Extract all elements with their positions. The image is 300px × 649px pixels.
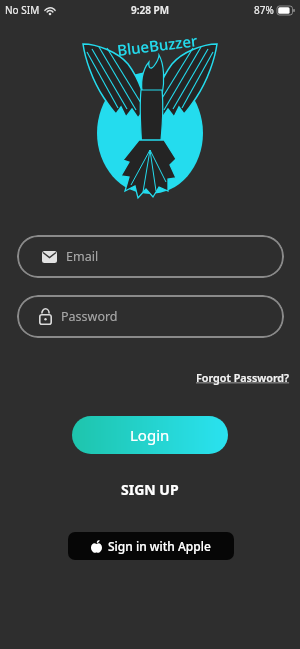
- staticText: Email: [66, 248, 99, 265]
- button[interactable]: Password: [17, 295, 284, 338]
- staticText: 9:28 PM: [131, 3, 169, 17]
- button[interactable]: Email: [17, 235, 284, 278]
- staticText: SIGN UP: [121, 480, 179, 499]
- staticText: No SIM: [5, 3, 40, 17]
- staticText: Sign in with Apple: [108, 538, 211, 554]
- staticText: Login: [130, 425, 170, 445]
- button[interactable]: Login: [72, 416, 228, 454]
- button[interactable]: Sign in with Apple: [68, 532, 234, 560]
- staticText: 87%: [254, 3, 274, 17]
- staticText: BlueBuzzer: [116, 30, 199, 60]
- staticText: Password: [61, 308, 118, 325]
- button[interactable]: SIGN UP: [121, 480, 179, 499]
- staticText: Forgot Password?: [196, 370, 290, 385]
- button[interactable]: Forgot Password?: [196, 370, 290, 385]
